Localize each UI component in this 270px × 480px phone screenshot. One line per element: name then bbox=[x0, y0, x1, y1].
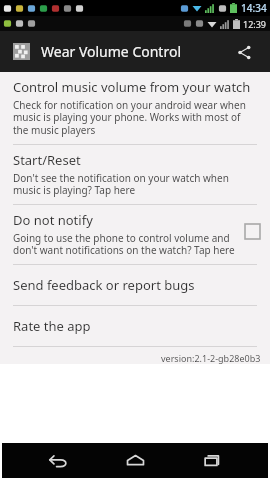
button[interactable]: Recents bbox=[191, 443, 235, 478]
staticText: 12:39 bbox=[243, 18, 267, 30]
staticText: version:2.1-2-gb28e0b3 bbox=[161, 352, 261, 364]
button[interactable]: Send feedback or report bugs bbox=[0, 265, 270, 305]
button[interactable]: Control music volume from your watch bbox=[0, 72, 270, 144]
button[interactable]: Start/Reset bbox=[0, 145, 270, 204]
button[interactable]: Home bbox=[113, 443, 157, 478]
staticText: Don't see the notification on your watch… bbox=[13, 171, 257, 197]
button[interactable]: Do not notify bbox=[0, 205, 270, 264]
button[interactable]: Rate the app bbox=[0, 306, 270, 346]
staticText: Do not notify bbox=[13, 211, 93, 229]
button[interactable]: Share bbox=[228, 36, 260, 68]
button[interactable]: Do not notify checkbox bbox=[245, 224, 260, 239]
staticText: 14:34 bbox=[241, 1, 267, 15]
staticText: Check for notification on your android w… bbox=[13, 98, 257, 137]
staticText: Wear Volume Control bbox=[41, 42, 181, 61]
button[interactable]: Back bbox=[36, 443, 80, 478]
staticText: Start/Reset bbox=[13, 151, 81, 169]
staticText: Rate the app bbox=[13, 317, 91, 335]
staticText: Going to use the phone to control volume… bbox=[13, 231, 239, 257]
staticText: Control music volume from your watch bbox=[13, 78, 251, 96]
staticText: Send feedback or report bugs bbox=[13, 276, 195, 294]
